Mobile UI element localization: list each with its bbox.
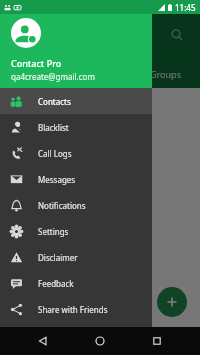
- staticText: Settings: [38, 226, 69, 237]
- staticText: Feedback: [38, 278, 74, 289]
- button[interactable]: Share with Friends: [0, 296, 152, 322]
- button[interactable]: Call Logs: [0, 140, 152, 166]
- button[interactable]: Messages: [0, 166, 152, 192]
- button[interactable]: Recents: [143, 327, 171, 355]
- button[interactable]: Settings: [0, 218, 152, 244]
- staticText: Disclaimer: [38, 252, 78, 263]
- staticText: Call Logs: [38, 148, 72, 159]
- staticText: Blacklist: [38, 122, 69, 133]
- button[interactable]: Blacklist: [0, 114, 152, 140]
- button[interactable]: Add contact: [157, 287, 187, 317]
- button[interactable]: Contacts: [0, 88, 152, 114]
- button[interactable]: Home: [86, 327, 114, 355]
- staticText: qa4create@gmail.com: [11, 71, 95, 82]
- staticText: Notifications: [38, 200, 86, 211]
- staticText: Share with Friends: [38, 304, 108, 315]
- staticText: Groups: [150, 68, 181, 80]
- staticText: Contacts: [38, 96, 71, 107]
- button[interactable]: Search: [166, 24, 188, 46]
- button[interactable]: Feedback: [0, 270, 152, 296]
- button[interactable]: Notifications: [0, 192, 152, 218]
- button[interactable]: Disclaimer: [0, 244, 152, 270]
- button[interactable]: Back: [29, 327, 57, 355]
- staticText: Contact Pro: [11, 57, 62, 69]
- staticText: Messages: [38, 174, 76, 185]
- staticText: 11:45: [175, 2, 196, 13]
